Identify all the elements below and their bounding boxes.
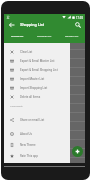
button[interactable]: Export & Email Master List <box>4 56 70 65</box>
staticText: Rate This app <box>20 154 38 157</box>
staticText: Import Master List <box>20 77 45 80</box>
staticText: PRODUCT LIST <box>65 35 79 37</box>
button[interactable]: Add new item <box>72 146 83 157</box>
button[interactable]: Back <box>6 20 17 29</box>
staticText: Shopping List <box>20 22 45 27</box>
staticText: SHOPPING LIST <box>37 35 52 37</box>
staticText: New Theme <box>20 143 36 146</box>
button[interactable]: MASTER LIST <box>4 29 31 43</box>
button[interactable]: PRODUCT LIST <box>58 29 85 43</box>
button[interactable]: New Theme <box>4 139 70 150</box>
button[interactable]: Export & Email Shopping List <box>4 65 70 74</box>
staticText: About Us <box>20 132 32 135</box>
staticText: 17:35 <box>76 16 83 19</box>
button[interactable]: About Us <box>4 128 70 139</box>
button[interactable]: Rate This app <box>4 150 70 161</box>
button[interactable]: Share or email List <box>4 114 70 125</box>
staticText: Share or email List <box>20 118 45 121</box>
staticText: Clear List <box>20 50 33 53</box>
button[interactable]: Import Shopping List <box>4 83 70 92</box>
staticText: Delete all Items <box>20 95 41 98</box>
staticText: Import Shopping List <box>20 86 48 89</box>
button[interactable]: SHOPPING LIST <box>31 29 58 43</box>
button[interactable]: Import Master List <box>4 74 70 83</box>
staticText: MASTER LIST <box>11 35 24 37</box>
button[interactable]: Delete all Items <box>4 92 70 101</box>
staticText: Export & Email Shopping List <box>20 68 58 71</box>
staticText: Community <box>10 105 23 108</box>
button[interactable]: Clear List <box>4 47 70 56</box>
staticText: Export & Email Master List <box>20 59 55 62</box>
button[interactable]: Search <box>72 20 83 29</box>
